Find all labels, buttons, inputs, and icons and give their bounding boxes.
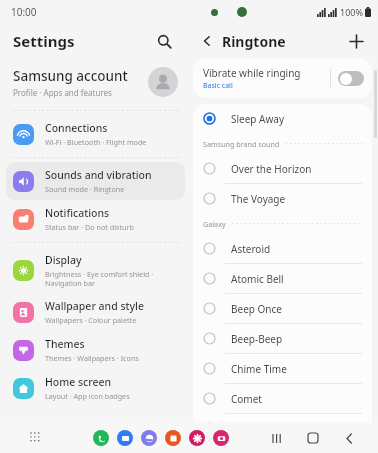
button[interactable]: internet: [141, 430, 157, 446]
staticText: Samsung brand sound: [203, 139, 280, 149]
button[interactable]: [338, 71, 364, 86]
staticText: Chime Time: [231, 362, 287, 376]
staticText: Sleep Away: [231, 112, 285, 126]
staticText: Over the Horizon: [231, 162, 312, 176]
staticText: Layout · App icon badges: [45, 391, 130, 401]
button[interactable]: Notifications: [6, 200, 185, 238]
staticText: The Voyage: [231, 192, 286, 206]
button[interactable]: Comet: [193, 384, 372, 413]
button[interactable]: Atomic Bell: [193, 264, 372, 293]
button[interactable]: Add: [344, 29, 368, 53]
staticText: Display: [45, 253, 82, 267]
staticText: Themes: [45, 337, 85, 351]
button[interactable]: Vibrate while ringing: [193, 58, 372, 98]
staticText: Galaxy: [203, 219, 226, 229]
button[interactable]: Recents: [266, 427, 288, 449]
button[interactable]: Wallpaper and style: [6, 293, 185, 331]
button[interactable]: Beep Once: [193, 294, 372, 323]
button[interactable]: Connections: [6, 115, 185, 153]
button[interactable]: Beep-Beep: [193, 324, 372, 353]
button[interactable]: Search: [151, 28, 177, 54]
staticText: Status bar · Do not disturb: [45, 222, 134, 232]
staticText: Beep-Beep: [231, 332, 283, 346]
staticText: Samsung account: [13, 67, 128, 85]
staticText: Comet: [231, 392, 262, 406]
staticText: Basic call: [203, 81, 233, 91]
staticText: Beep Once: [231, 302, 282, 316]
button[interactable]: gallery: [189, 430, 205, 446]
staticText: Asteroid: [231, 242, 271, 256]
button[interactable]: Asteroid: [193, 234, 372, 263]
staticText: Home screen: [45, 375, 112, 389]
staticText: Vibrate while ringing: [203, 66, 301, 80]
staticText: Brightness · Eye comfort shield · Naviga…: [45, 269, 154, 288]
button[interactable]: Sounds and vibration: [6, 162, 185, 200]
button[interactable]: Over the Horizon: [193, 154, 372, 183]
button[interactable]: phone: [93, 430, 109, 446]
button[interactable]: The Voyage: [193, 184, 372, 213]
staticText: 10:00: [11, 5, 37, 19]
staticText: Settings: [13, 31, 75, 51]
staticText: Sounds and vibration: [45, 168, 152, 182]
staticText: Wallpaper and style: [45, 299, 144, 313]
button[interactable]: Home: [302, 427, 324, 449]
button[interactable]: Cosmos: [193, 414, 372, 443]
staticText: Atomic Bell: [231, 272, 284, 286]
button[interactable]: Back: [338, 427, 360, 449]
button[interactable]: Display: [6, 247, 185, 293]
button[interactable]: Sleep Away: [193, 104, 372, 133]
button[interactable]: Apps: [26, 428, 46, 448]
button[interactable]: Chime Time: [193, 354, 372, 383]
button[interactable]: msg: [117, 430, 133, 446]
staticText: Wallpapers · Colour palette: [45, 315, 137, 325]
staticText: Wi-Fi · Bluetooth · Flight mode: [45, 137, 147, 147]
button[interactable]: Samsung account: [0, 58, 191, 106]
staticText: Profile · Apps and features: [13, 87, 112, 98]
staticText: Ringtone: [222, 32, 286, 51]
button[interactable]: store: [165, 430, 181, 446]
staticText: 100%: [340, 6, 363, 18]
button[interactable]: Back: [195, 29, 219, 53]
button[interactable]: camera: [213, 430, 229, 446]
button[interactable]: Home screen: [6, 369, 185, 407]
button[interactable]: Themes: [6, 331, 185, 369]
staticText: Notifications: [45, 206, 110, 220]
staticText: Themes · Wallpapers · Icons: [45, 353, 139, 363]
staticText: Connections: [45, 121, 108, 135]
staticText: Sound mode · Ringtone: [45, 184, 125, 194]
